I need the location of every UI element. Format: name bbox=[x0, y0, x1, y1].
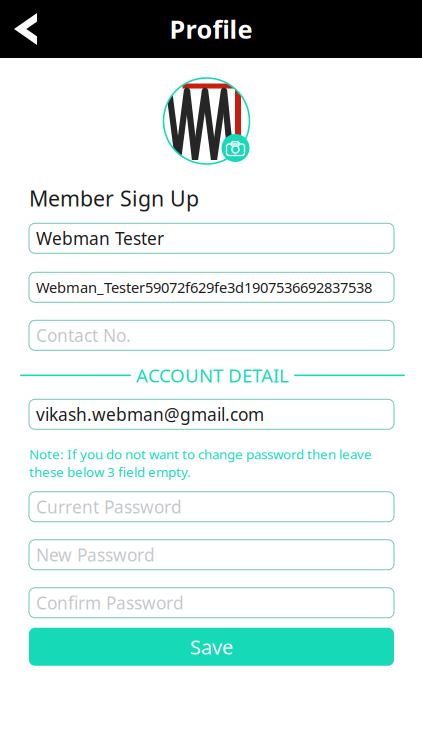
staticText: Profile bbox=[169, 12, 252, 46]
staticText: vikash.webman@gmail.com bbox=[36, 403, 264, 426]
button[interactable]: Change profile photo bbox=[221, 134, 249, 162]
staticText: Save bbox=[190, 633, 233, 660]
staticText: Note: If you do not want to change passw… bbox=[29, 445, 372, 481]
staticText: Webman Tester bbox=[36, 227, 164, 250]
button[interactable]: Save bbox=[29, 628, 394, 666]
button[interactable]: Back bbox=[0, 0, 53, 58]
staticText: ACCOUNT DETAIL bbox=[136, 363, 289, 388]
staticText: Contact No. bbox=[36, 324, 131, 347]
staticText: Webman_Tester59072f629fe3d19075366928375… bbox=[36, 278, 372, 297]
staticText: New Password bbox=[36, 543, 155, 566]
staticText: Confirm Password bbox=[36, 591, 184, 614]
staticText: Member Sign Up bbox=[29, 184, 199, 212]
staticText: Current Password bbox=[36, 495, 182, 518]
